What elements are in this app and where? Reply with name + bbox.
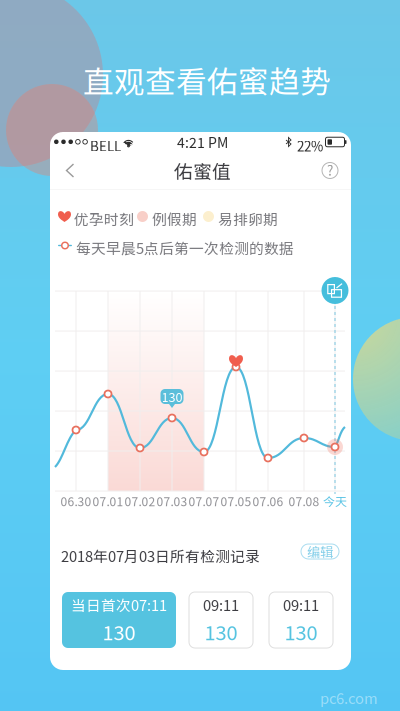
staticText: 07.02 — [124, 492, 155, 510]
staticText: 06.30 — [60, 492, 91, 510]
staticText: 例假期 — [152, 208, 197, 229]
staticText: 每天早晨5点后第一次检测的数据 — [76, 237, 294, 258]
staticText: 09:11 — [283, 594, 319, 615]
staticText: BELL — [90, 136, 121, 155]
staticText: 07.07 — [188, 492, 219, 510]
staticText: 4:21 PM — [177, 132, 228, 152]
staticText: ? — [327, 160, 333, 180]
staticText: 130 — [161, 387, 182, 406]
staticText: 07.03 — [156, 492, 187, 510]
staticText: 优孕时刻 — [74, 208, 134, 229]
staticText: 今天 — [323, 492, 347, 510]
staticText: 易排卵期 — [218, 208, 278, 229]
button[interactable]: Help — [312, 152, 348, 189]
staticText: 2018年07月03日所有检测记录 — [61, 545, 260, 566]
staticText: 07.01 — [92, 492, 123, 510]
staticText: 09:11 — [203, 594, 239, 615]
button[interactable]: Expand chart — [321, 277, 348, 304]
staticText: 130 — [102, 617, 135, 646]
button[interactable]: 编辑 — [301, 544, 339, 559]
staticText: 22% — [297, 136, 323, 155]
staticText: 直观查看佑蜜趋势 — [83, 58, 331, 102]
staticText: 130 — [284, 617, 317, 646]
staticText: 130 — [204, 617, 237, 646]
staticText: 当日首次07:11 — [71, 594, 167, 615]
button[interactable]: 09:11 — [269, 592, 333, 648]
button[interactable]: Back — [52, 152, 88, 189]
staticText: 佑蜜值 — [174, 157, 231, 184]
button[interactable]: 09:11 — [189, 592, 253, 648]
staticText: 07.08 — [288, 492, 319, 510]
staticText: 07.05 — [220, 492, 251, 510]
staticText: pc6.com — [320, 687, 378, 708]
staticText: 编辑 — [307, 542, 333, 561]
staticText: 07.06 — [252, 492, 283, 510]
button[interactable]: 当日首次07:11 — [62, 592, 176, 648]
